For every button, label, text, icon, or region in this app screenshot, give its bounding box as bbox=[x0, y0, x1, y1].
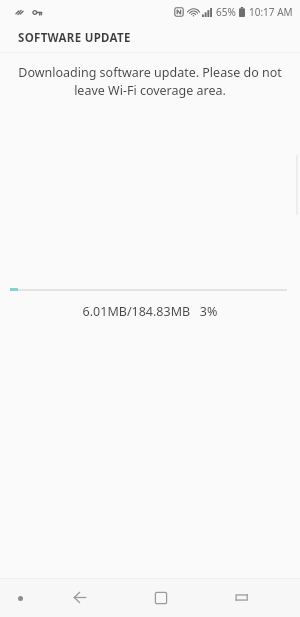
button[interactable]: Home bbox=[120, 578, 201, 617]
staticText: Downloading software update. Please do n… bbox=[14, 64, 286, 99]
staticText: 6.01MB/184.83MB 3% bbox=[0, 303, 300, 320]
staticText: 10:17 AM bbox=[249, 5, 293, 19]
button[interactable]: Recent apps bbox=[201, 578, 282, 617]
button[interactable]: Hide navigation bar bbox=[12, 590, 28, 606]
button[interactable]: Back bbox=[38, 578, 120, 617]
staticText: 65% bbox=[216, 5, 236, 19]
staticText: SOFTWARE UPDATE bbox=[18, 30, 131, 46]
